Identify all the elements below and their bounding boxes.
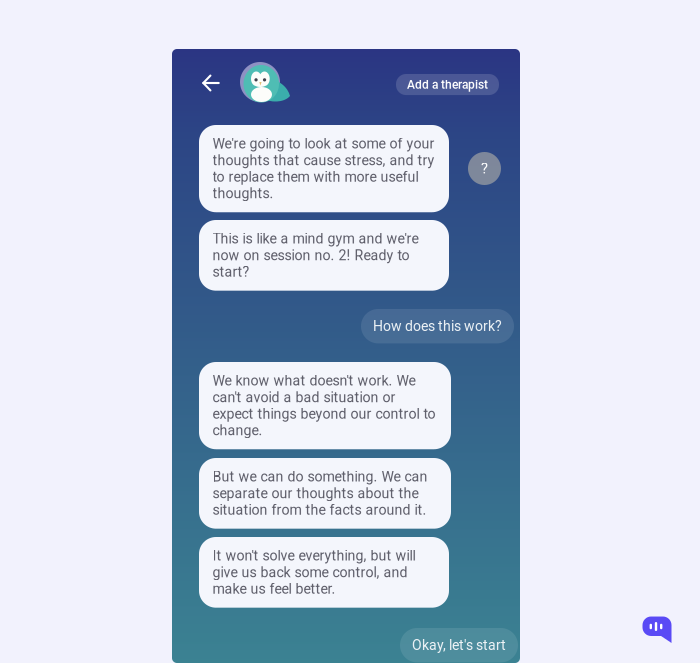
staticText: How does this work? bbox=[373, 318, 502, 334]
staticText: But we can do something. We can separate… bbox=[212, 468, 427, 518]
button[interactable]: Help bbox=[468, 152, 501, 185]
button[interactable]: Add a therapist bbox=[396, 74, 499, 95]
button[interactable]: Back bbox=[196, 68, 226, 98]
staticText: We're going to look at some of your thou… bbox=[212, 135, 434, 202]
button[interactable]: Okay, let's start bbox=[400, 628, 518, 662]
staticText: ? bbox=[481, 160, 488, 177]
staticText: Add a therapist bbox=[407, 77, 488, 92]
staticText: It won't solve everything, but will give… bbox=[212, 547, 415, 597]
button[interactable]: Open chat bbox=[642, 616, 672, 644]
staticText: We know what doesn't work. We can't avoi… bbox=[212, 372, 435, 439]
button[interactable]: How does this work? bbox=[361, 309, 514, 343]
staticText: This is like a mind gym and we're now on… bbox=[212, 230, 418, 280]
staticText: Okay, let's start bbox=[412, 637, 506, 653]
